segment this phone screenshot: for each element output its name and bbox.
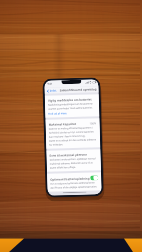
button[interactable]: Evne til maksimal ydeevne [46, 149, 101, 172]
staticText: For at reducere batteriets aeldning laer… [50, 181, 98, 189]
button[interactable]: Vigtig meddelelse om batteriet [45, 94, 99, 118]
staticText: Maksimal kapacitet [49, 122, 77, 127]
staticText: Evne til maksimal ydeevne [49, 153, 88, 158]
staticText: Dit batteri understotter i ojeblikket no… [50, 157, 98, 169]
staticText: Dette er et udtryk for den samlede ydeev… [49, 138, 97, 146]
other: Optimeret batteriopladning [90, 175, 98, 180]
staticText: Optimeret batteriopladning [50, 176, 90, 182]
button[interactable]: Maksimal kapacitet [45, 118, 100, 149]
staticText: Dette er et maling af batterikapaciteten… [49, 126, 97, 138]
staticText: 100% [89, 121, 97, 125]
button[interactable]: Find ud af mere [48, 111, 67, 115]
staticText: Sadomhhhoomd oprettilog [59, 87, 97, 92]
button[interactable]: Back [46, 88, 58, 93]
staticText: Vigtig meddelelse om batteriet [48, 97, 92, 103]
staticText: Indst. [49, 88, 58, 93]
staticText: Nedlukningsindstillingen kan forekomme u… [48, 102, 96, 110]
button[interactable]: Optimeret batteriopladning [50, 175, 98, 182]
staticText: 9:41 [47, 82, 53, 86]
